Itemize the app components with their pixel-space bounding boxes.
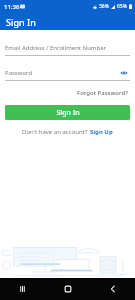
button[interactable]: Back bbox=[90, 278, 135, 300]
button[interactable]: Home bbox=[45, 278, 90, 300]
button[interactable]: Sign Up bbox=[89, 127, 114, 137]
staticText: Don't have an account? bbox=[22, 128, 89, 136]
button[interactable]: Sign In bbox=[5, 105, 130, 120]
staticText: Email Address / Enrollment Number bbox=[5, 44, 107, 52]
button[interactable]: Show password bbox=[118, 67, 130, 79]
button[interactable]: Password bbox=[5, 66, 130, 80]
staticText: Sign In bbox=[6, 16, 36, 28]
button[interactable]: Recent apps bbox=[0, 278, 45, 300]
staticText: 11:36 bbox=[4, 3, 20, 11]
staticText: Forgot Password? bbox=[77, 89, 128, 97]
staticText: 36% bbox=[99, 3, 109, 10]
staticText: Sign Up bbox=[90, 128, 113, 136]
staticText: Sign In bbox=[56, 108, 80, 118]
staticText: Password bbox=[5, 69, 33, 77]
button[interactable]: Email Address / Enrollment Number bbox=[5, 41, 130, 55]
staticText: 65% bbox=[117, 3, 127, 10]
button[interactable]: Forgot Password? bbox=[75, 87, 130, 99]
